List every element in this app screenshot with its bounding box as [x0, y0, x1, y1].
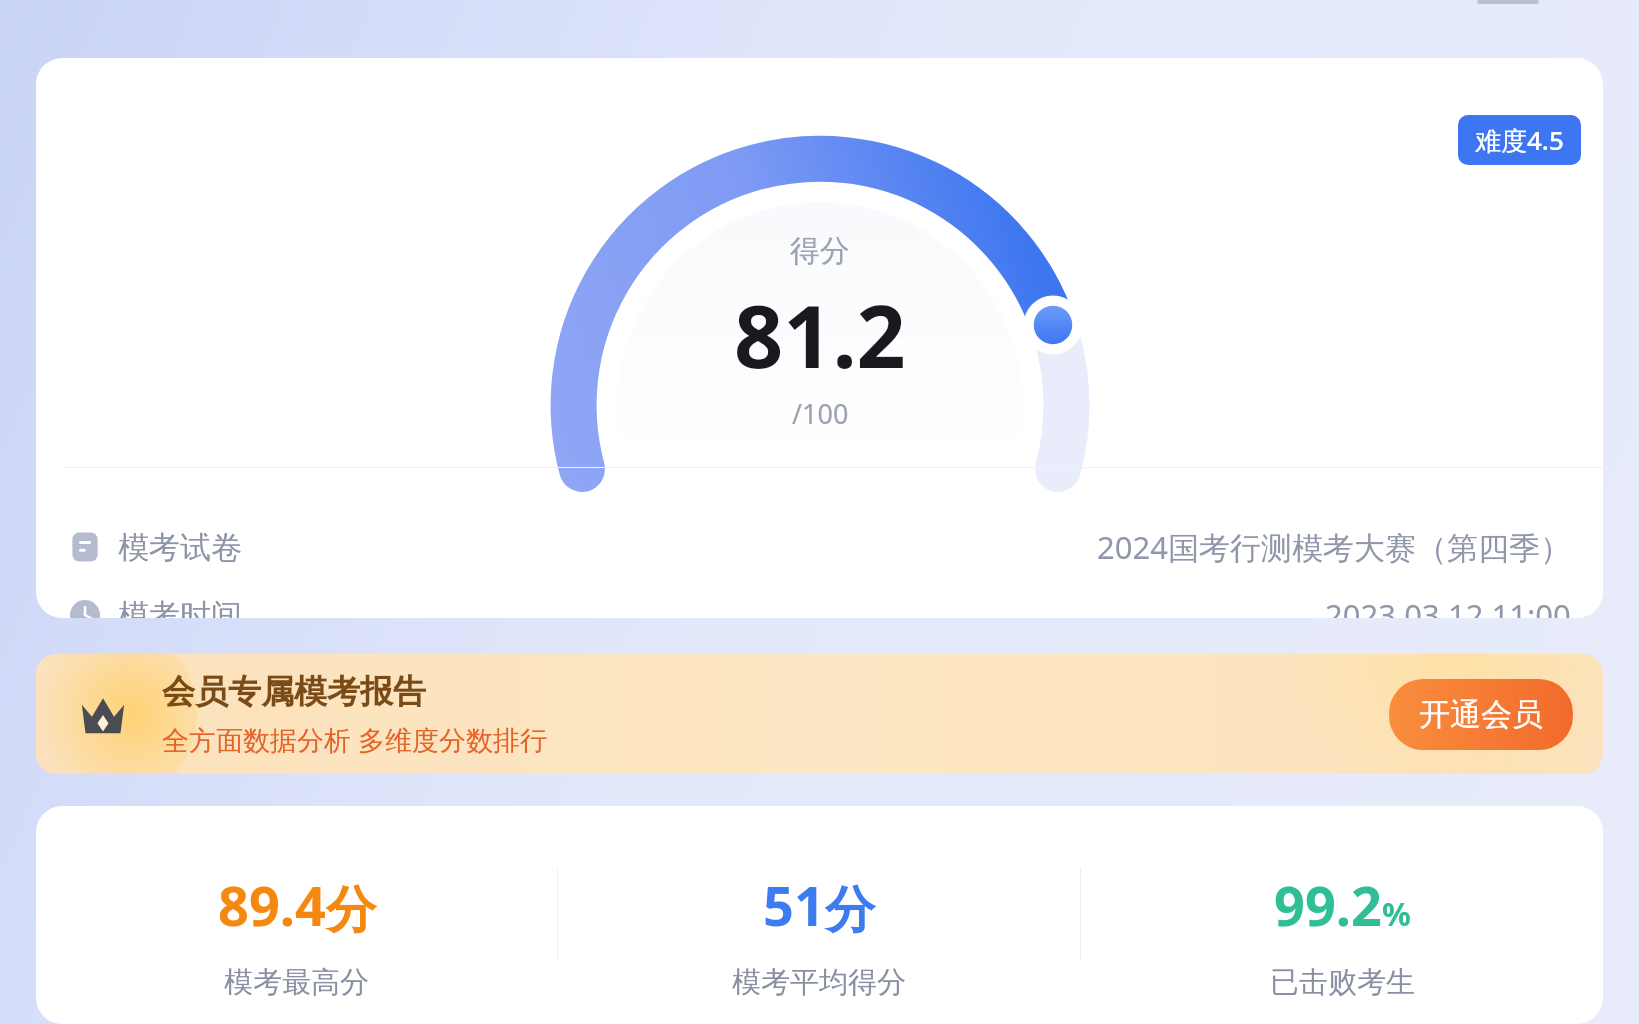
staticText: 开通会员	[1419, 695, 1543, 734]
button[interactable]: 89.4	[36, 868, 557, 1001]
staticText: 51	[763, 868, 825, 942]
staticText: 99.2	[1274, 868, 1382, 942]
button[interactable]: 51	[558, 868, 1080, 1001]
staticText: 已击败考生	[1270, 964, 1415, 1001]
button[interactable]: 难度4.5	[36, 58, 1603, 618]
staticText: 难度4.5	[1475, 122, 1564, 158]
staticText: 模考时间	[118, 596, 242, 618]
button[interactable]: 难度4.5	[1458, 115, 1581, 165]
button[interactable]: 开通会员	[1389, 679, 1573, 750]
button[interactable]: 99.2	[1081, 868, 1603, 1001]
staticText: 模考最高分	[224, 964, 369, 1001]
staticText: 分	[326, 879, 376, 942]
staticText: 2023.03.12 11:00	[1325, 594, 1571, 618]
staticText: /100	[792, 395, 849, 432]
button[interactable]: 会员专属模考报告	[36, 654, 1603, 774]
staticText: 模考试卷	[118, 528, 242, 567]
staticText: 2024国考行测模考大赛（第四季）	[1097, 526, 1571, 568]
staticText: 分	[825, 879, 875, 942]
staticText: 全方面数据分析 多维度分数排行	[162, 721, 548, 758]
staticText: 81.2	[734, 276, 906, 393]
staticText: 得分	[790, 232, 850, 270]
staticText: 会员专属模考报告	[162, 671, 426, 713]
staticText: 89.4	[218, 868, 326, 942]
staticText: 模考平均得分	[732, 964, 906, 1001]
staticText: %	[1382, 892, 1411, 936]
